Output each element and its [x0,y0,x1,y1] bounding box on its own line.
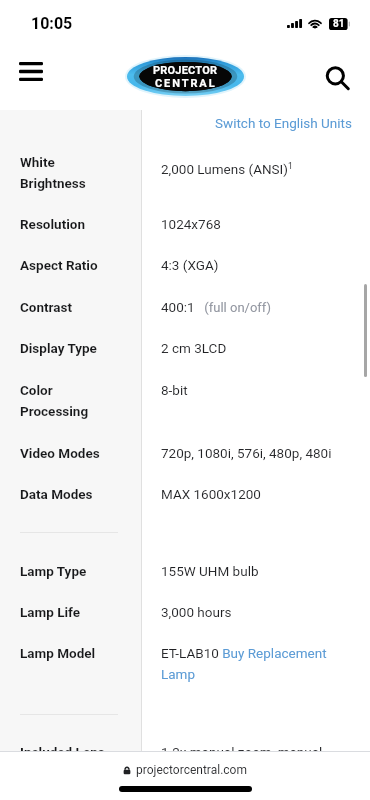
button[interactable]: Projector Central home [127,57,244,96]
staticText: Data Modes [20,486,93,502]
staticText: MAX 1600x1200 [161,486,261,502]
staticText: 1024x768 [161,216,221,232]
staticText: ET-LAB10 Buy Replacement Lamp [161,645,351,682]
button[interactable]: ET-LAB10 Buy Replacement Lamp [161,645,351,682]
staticText: Display Type [20,340,97,356]
button[interactable]: Switch to English Units [215,115,352,131]
staticText: CENTRAL [155,77,217,90]
staticText: projectorcentral.com [136,763,247,777]
staticText: Lamp Life [20,604,81,620]
staticText: White Brightness [20,154,86,191]
staticText: Contrast [20,299,73,315]
staticText: 1.2x manual zoom, manual [161,744,323,751]
button[interactable]: Search [314,55,360,101]
staticText: 2,000 Lumens (ANSI)1 [161,161,293,177]
staticText: Resolution [20,216,85,232]
staticText: 8-bit [161,382,188,398]
staticText: Color Processing [20,382,89,419]
staticText: PROJECTOR [153,64,218,77]
staticText: 400:1 (full on/off) [161,299,272,315]
button[interactable]: projectorcentral.com [123,763,247,777]
button[interactable]: Menu [8,48,54,94]
staticText: 2 cm 3LCD [161,340,227,356]
staticText: Video Modes [20,445,100,461]
staticText: 81 [333,18,345,30]
staticText: 155W UHM bulb [161,563,259,579]
staticText: 10:05 [31,14,73,33]
staticText: Switch to English Units [215,115,352,131]
staticText: 4:3 (XGA) [161,257,219,273]
staticText: Aspect Ratio [20,257,98,273]
staticText: Lamp Type [20,563,87,579]
staticText: 720p, 1080i, 576i, 480p, 480i [161,445,332,461]
staticText: Lamp Model [20,645,96,661]
staticText: 3,000 hours [161,604,232,620]
staticText: Included Lens [20,744,105,751]
